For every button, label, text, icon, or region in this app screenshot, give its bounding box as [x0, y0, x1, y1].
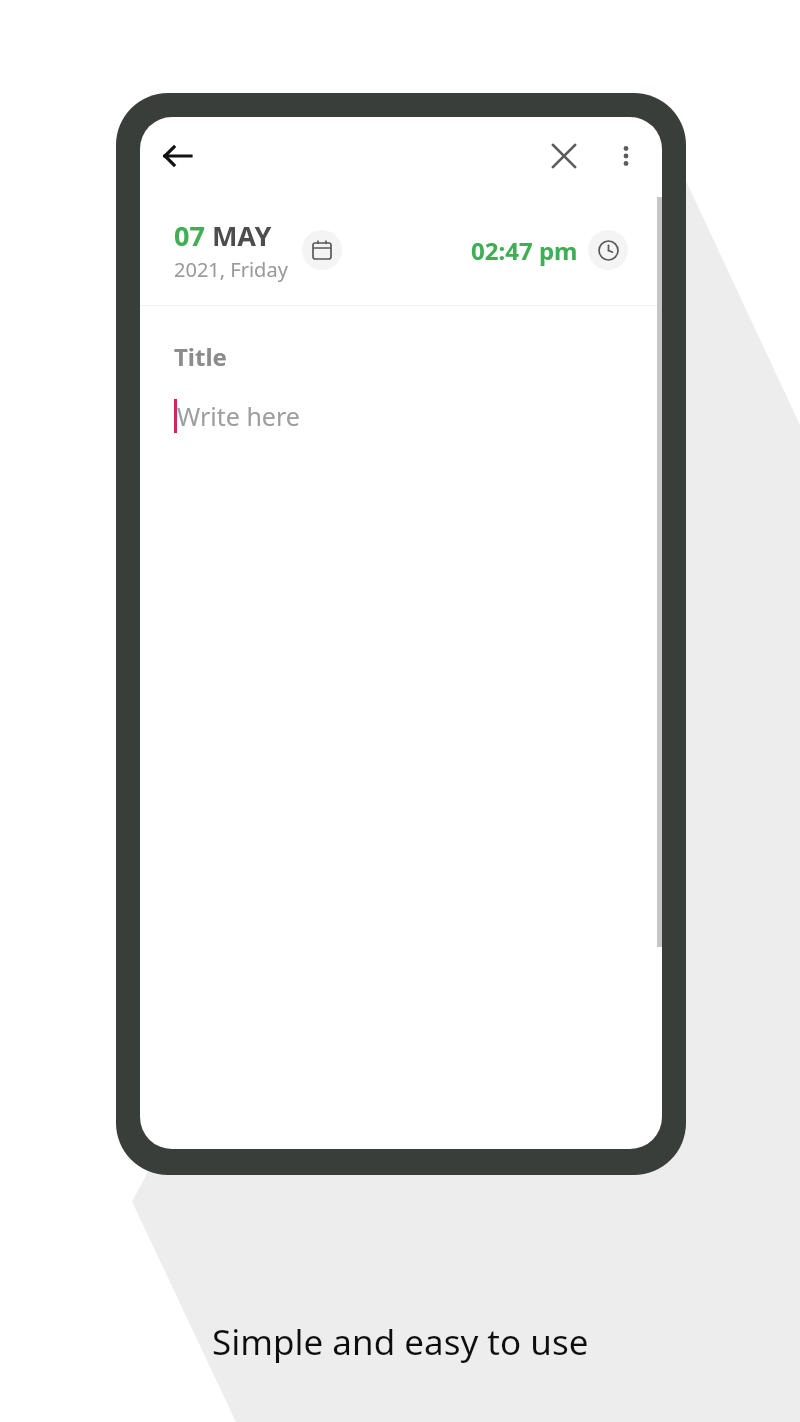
- staticText: Simple and easy to use: [212, 1318, 589, 1366]
- button[interactable]: 07 MAY: [174, 217, 342, 283]
- button[interactable]: Back: [154, 132, 202, 180]
- staticText: Write here: [177, 399, 300, 433]
- staticText: Title: [174, 340, 227, 373]
- staticText: 07 MAY: [174, 217, 272, 254]
- staticText: 02:47 pm: [471, 234, 578, 267]
- button[interactable]: Close: [540, 132, 588, 180]
- button[interactable]: More options: [604, 134, 648, 178]
- button[interactable]: 02:47 pm: [471, 230, 628, 270]
- staticText: 2021, Friday: [174, 256, 288, 283]
